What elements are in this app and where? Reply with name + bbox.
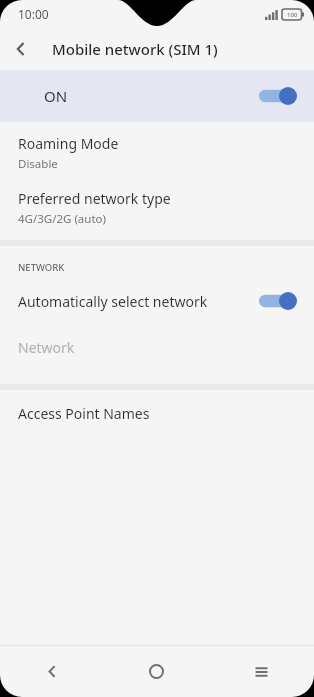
- button[interactable]: Home: [104, 646, 209, 697]
- button[interactable]: Back: [0, 646, 104, 697]
- button[interactable]: Preferred network type: [0, 177, 314, 232]
- staticText: Automatically select network: [18, 292, 208, 311]
- staticText: 10:00: [18, 6, 49, 22]
- button[interactable]: Back: [0, 28, 42, 70]
- staticText: Preferred network type: [18, 189, 171, 208]
- staticText: Network: [18, 338, 75, 357]
- staticText: Access Point Names: [18, 404, 150, 423]
- button[interactable]: Access Point Names: [0, 390, 314, 436]
- staticText: 4G/3G/2G (auto): [18, 211, 106, 227]
- button[interactable]: Automatically select network: [0, 278, 314, 324]
- staticText: 100: [287, 11, 298, 19]
- button[interactable]: ON: [0, 70, 314, 122]
- button[interactable]: Roaming Mode: [0, 122, 314, 177]
- staticText: Roaming Mode: [18, 134, 119, 153]
- button[interactable]: Recent apps: [209, 646, 314, 697]
- staticText: Mobile network (SIM 1): [52, 39, 218, 59]
- staticText: ON: [44, 86, 68, 106]
- staticText: NETWORK: [18, 261, 65, 274]
- staticText: Disable: [18, 156, 58, 172]
